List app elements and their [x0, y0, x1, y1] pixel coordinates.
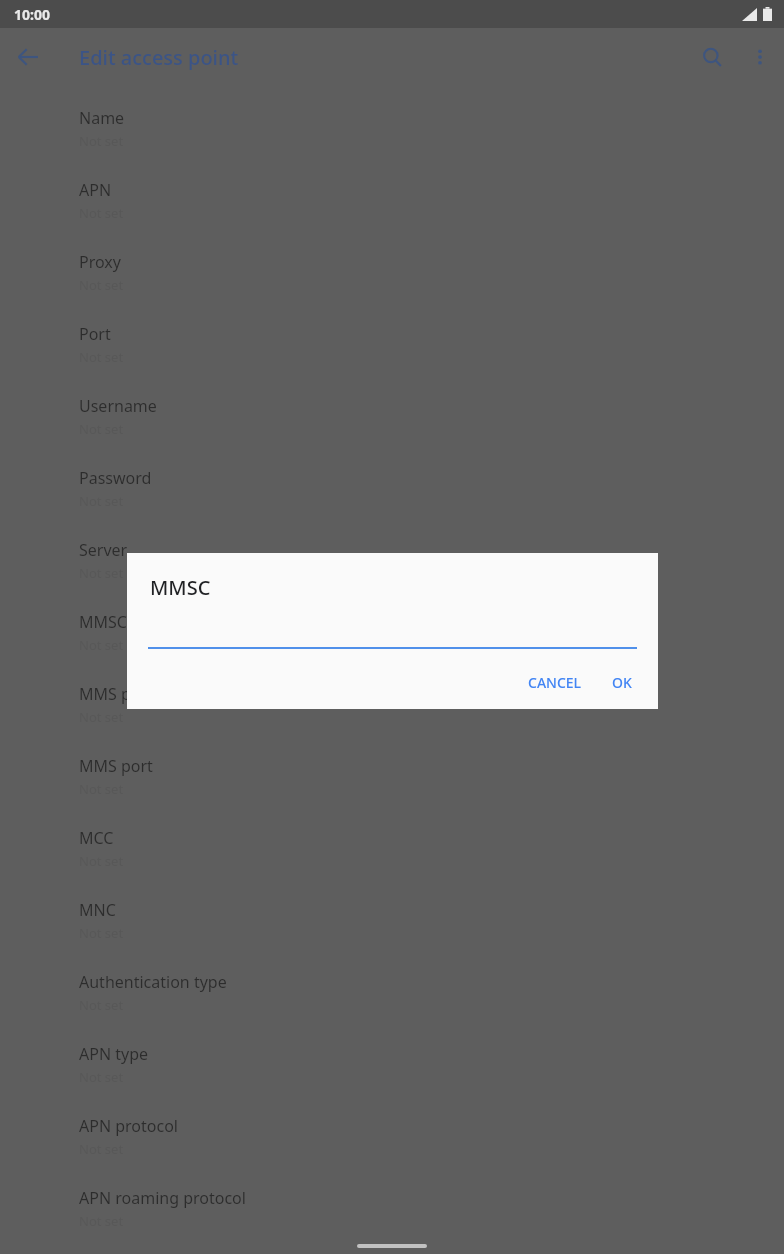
- staticText: Edit access point: [79, 44, 239, 71]
- staticText: CANCEL: [528, 673, 582, 692]
- staticText: Name: [79, 107, 125, 129]
- button[interactable]: More options: [736, 33, 784, 81]
- staticText: Username: [79, 395, 157, 417]
- button[interactable]: APN roaming protocol: [0, 1176, 784, 1248]
- staticText: OK: [612, 673, 632, 692]
- staticText: Server: [79, 539, 128, 561]
- staticText: MNC: [79, 899, 116, 921]
- staticText: MMS port: [79, 755, 153, 777]
- button[interactable]: Server: [0, 528, 784, 600]
- staticText: Port: [79, 323, 111, 345]
- staticText: Password: [79, 467, 152, 489]
- staticText: APN protocol: [79, 1115, 178, 1137]
- button[interactable]: APN protocol: [0, 1104, 784, 1176]
- staticText: MMSC: [79, 611, 127, 633]
- staticText: 10:00: [14, 5, 50, 24]
- staticText: Authentication type: [79, 971, 227, 993]
- button[interactable]: Search: [688, 33, 736, 81]
- button[interactable]: MMS proxy: [0, 672, 784, 744]
- staticText: APN: [79, 179, 112, 201]
- button[interactable]: [148, 635, 637, 649]
- staticText: Proxy: [79, 251, 121, 273]
- staticText: APN type: [79, 1043, 149, 1065]
- button[interactable]: CANCEL: [519, 666, 591, 699]
- staticText: MCC: [79, 827, 114, 849]
- staticText: APN roaming protocol: [79, 1187, 246, 1209]
- button[interactable]: Authentication type: [0, 960, 784, 1032]
- button[interactable]: MMSC: [0, 600, 784, 672]
- button[interactable]: Navigate up: [4, 33, 52, 81]
- staticText: MMSC: [150, 574, 211, 601]
- button[interactable]: OK: [603, 666, 641, 699]
- staticText: MMS proxy: [79, 683, 164, 705]
